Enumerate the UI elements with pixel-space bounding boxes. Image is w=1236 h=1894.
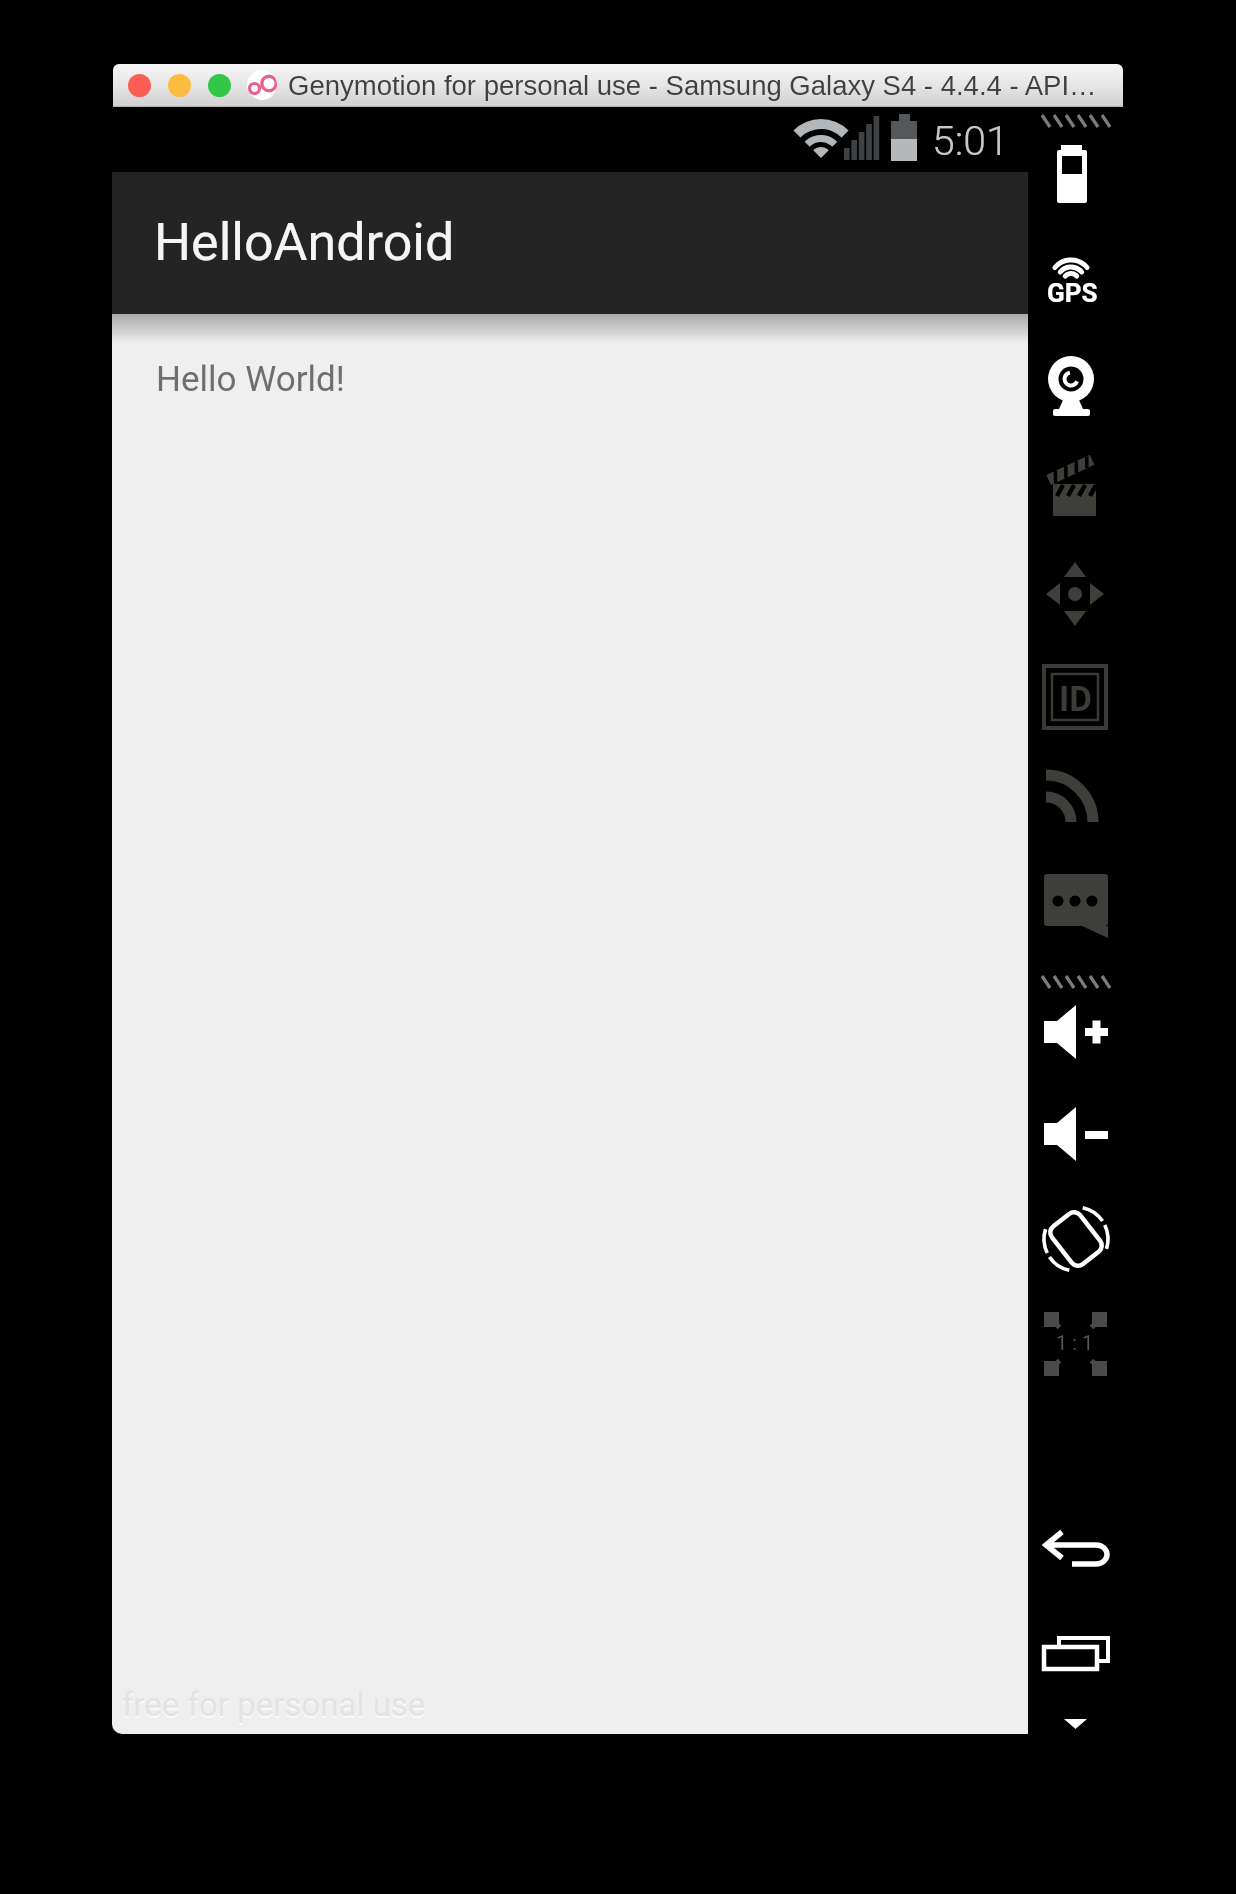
button[interactable]: [1040, 566, 1108, 622]
button[interactable]: [1040, 351, 1108, 407]
button[interactable]: [208, 74, 231, 97]
staticText: Hello World!: [156, 359, 345, 400]
staticText: GPS: [1047, 278, 1098, 308]
staticText: 5:01: [932, 117, 1009, 165]
staticText: Genymotion for personal use - Samsung Ga…: [288, 70, 1097, 101]
staticText: 1 : 1: [1056, 1331, 1094, 1354]
staticText: free for personal use: [122, 1685, 426, 1724]
button[interactable]: [1040, 1211, 1108, 1267]
button[interactable]: [1040, 669, 1108, 725]
button[interactable]: [1040, 146, 1108, 202]
staticText: free for personal use: [122, 1687, 426, 1726]
button[interactable]: [1040, 1106, 1108, 1162]
button[interactable]: [1040, 1315, 1108, 1371]
button[interactable]: [1040, 769, 1108, 825]
staticText: HelloAndroid: [154, 212, 455, 273]
button[interactable]: [1040, 249, 1108, 305]
button[interactable]: [1040, 1515, 1108, 1571]
button[interactable]: [1040, 1004, 1108, 1060]
staticText: ID: [1059, 679, 1092, 720]
button[interactable]: [168, 74, 191, 97]
button[interactable]: [1040, 877, 1108, 933]
button[interactable]: [1040, 459, 1108, 515]
button[interactable]: [1057, 1707, 1095, 1739]
button[interactable]: [1040, 1625, 1108, 1681]
button[interactable]: [128, 74, 151, 97]
